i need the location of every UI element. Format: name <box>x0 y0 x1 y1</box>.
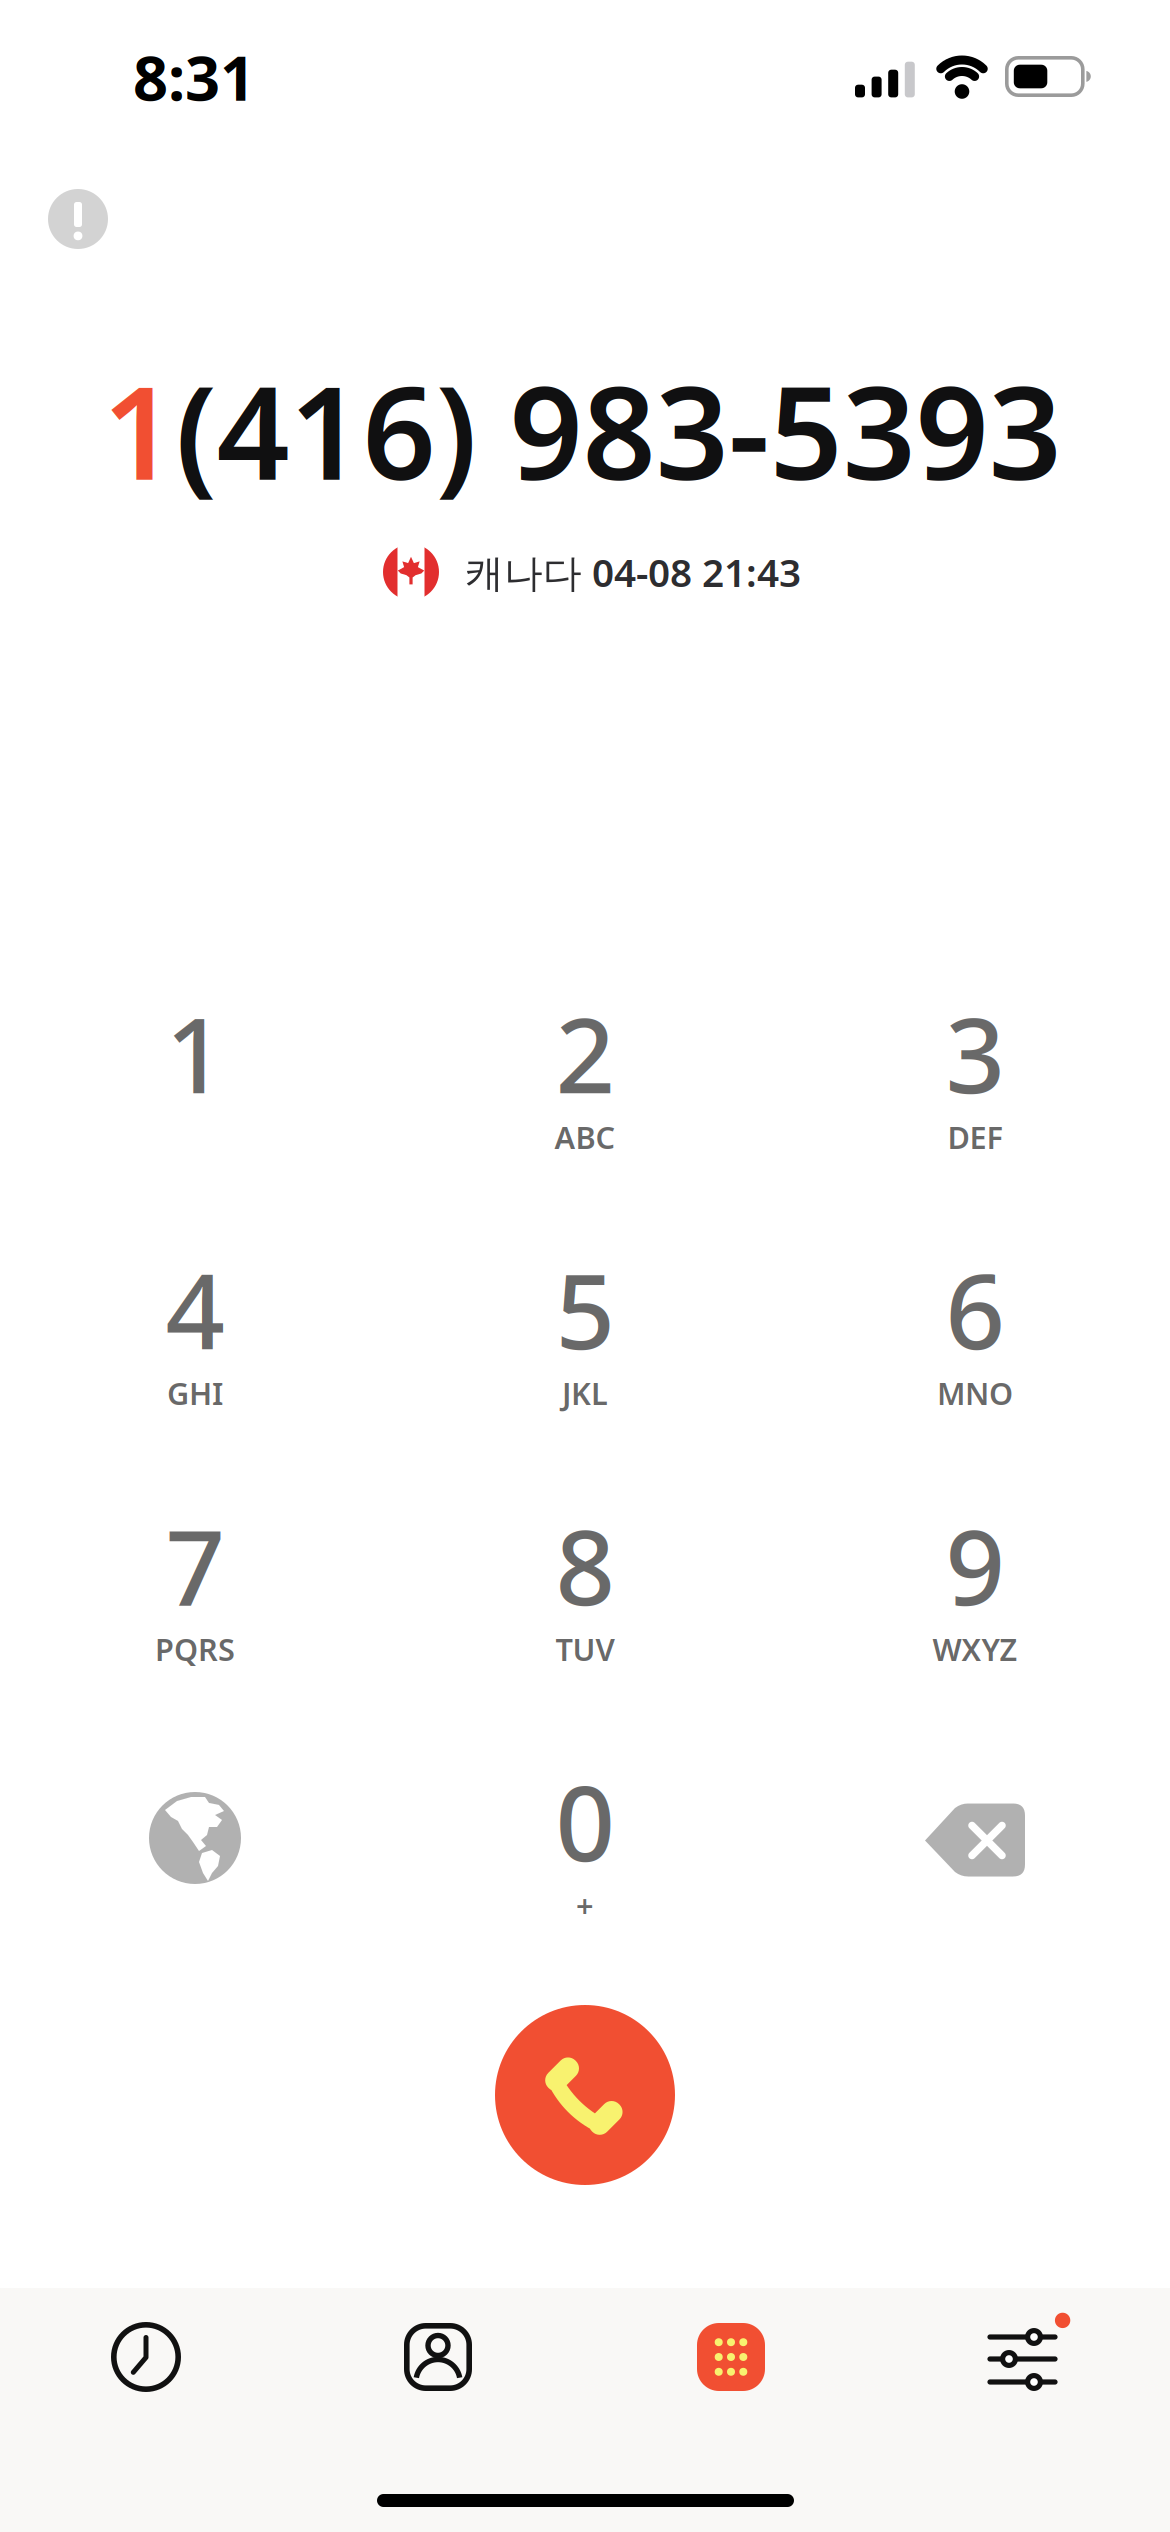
staticText: PQRS <box>155 1629 235 1669</box>
staticText: JKL <box>562 1373 608 1413</box>
button[interactable]: 9 <box>780 1483 1170 1733</box>
button[interactable]: Keypad <box>651 2297 811 2417</box>
staticText: 3 <box>945 984 1004 1122</box>
button[interactable]: Delete <box>780 1739 1170 1989</box>
staticText: 8:31 <box>133 36 255 118</box>
staticText: 7 <box>165 1496 224 1634</box>
staticText: WXYZ <box>932 1629 1017 1669</box>
staticText: + <box>576 1885 594 1925</box>
staticText: 8 <box>555 1496 614 1634</box>
staticText: 0 <box>555 1752 614 1890</box>
button[interactable]: 0 <box>390 1739 780 1989</box>
staticText: DEF <box>947 1117 1002 1157</box>
button[interactable]: Spam warning <box>48 189 108 249</box>
staticText: 캐나다 04-08 21:43 <box>465 546 801 598</box>
staticText: 5 <box>555 1240 614 1378</box>
staticText: TUV <box>555 1629 614 1669</box>
staticText: ABC <box>554 1117 615 1157</box>
staticText: 4 <box>165 1240 224 1378</box>
staticText: 1 <box>165 984 224 1122</box>
button[interactable]: 4 <box>0 1227 390 1477</box>
staticText: (416) 983-5393 <box>175 345 1061 515</box>
button[interactable]: 1 <box>0 971 390 1221</box>
staticText: 9 <box>945 1496 1004 1634</box>
staticText: GHI <box>167 1373 223 1413</box>
button[interactable]: Settings <box>943 2292 1103 2412</box>
button[interactable]: Call <box>495 2005 675 2185</box>
staticText: 1 <box>102 345 175 515</box>
button[interactable]: 2 <box>390 971 780 1221</box>
button[interactable]: 8 <box>390 1483 780 1733</box>
button[interactable]: 7 <box>0 1483 390 1733</box>
staticText: 6 <box>945 1240 1004 1378</box>
staticText: MNO <box>937 1373 1013 1413</box>
button[interactable]: 5 <box>390 1227 780 1477</box>
button[interactable]: Recents <box>66 2297 226 2417</box>
button[interactable]: Change region <box>0 1739 390 1989</box>
staticText: 2 <box>555 984 614 1122</box>
button[interactable]: 6 <box>780 1227 1170 1477</box>
button[interactable]: 3 <box>780 971 1170 1221</box>
button[interactable]: Contacts <box>358 2297 518 2417</box>
